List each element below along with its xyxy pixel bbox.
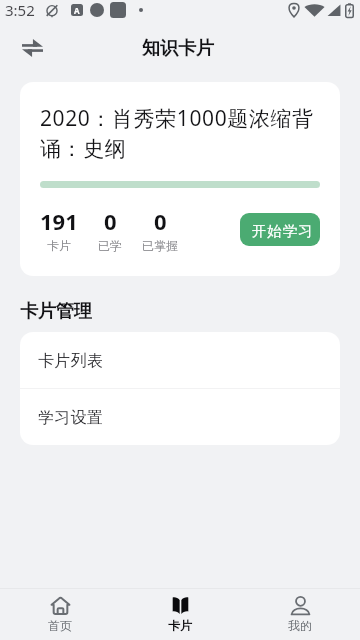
- button[interactable]: Switch: [12, 28, 52, 68]
- staticText: A: [74, 5, 80, 16]
- staticText: 开始学习: [252, 222, 314, 240]
- staticText: 3:52: [5, 0, 35, 20]
- staticText: 卡片: [47, 238, 71, 253]
- staticText: 191: [40, 206, 78, 236]
- staticText: 知识卡片: [142, 37, 214, 60]
- staticText: 0: [104, 206, 117, 236]
- staticText: 2020：肖秀荣1000题浓缩背诵：史纲: [40, 104, 320, 163]
- button[interactable]: 开始学习: [240, 213, 320, 246]
- button[interactable]: 2020：肖秀荣1000题浓缩背诵：史纲: [20, 82, 340, 276]
- staticText: 首页: [48, 618, 72, 633]
- button[interactable]: 首页: [0, 589, 120, 640]
- staticText: 卡片列表: [38, 351, 104, 371]
- staticText: 0: [154, 206, 167, 236]
- button[interactable]: 卡片列表: [20, 332, 340, 388]
- staticText: 我的: [288, 618, 312, 633]
- staticText: 已掌握: [142, 238, 178, 253]
- staticText: 学习设置: [38, 408, 104, 428]
- button[interactable]: 学习设置: [20, 389, 340, 445]
- staticText: 卡片: [168, 618, 192, 633]
- staticText: 已学: [98, 238, 122, 253]
- button[interactable]: 我的: [240, 589, 360, 640]
- staticText: 卡片管理: [20, 300, 92, 323]
- button[interactable]: 卡片: [120, 589, 240, 640]
